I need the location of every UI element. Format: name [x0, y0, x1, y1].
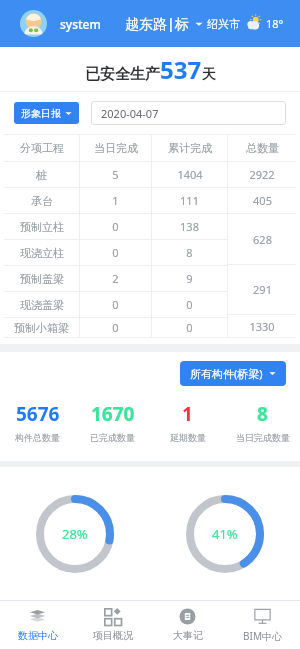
staticText: 构件总数量 [15, 432, 60, 443]
staticText: 预制盖梁 [20, 272, 64, 286]
button[interactable]: 1 [150, 399, 225, 445]
staticText: 2 [112, 271, 119, 286]
staticText: 总数量 [246, 141, 279, 155]
staticText: 41% [212, 525, 238, 543]
staticText: 291 [253, 282, 272, 297]
staticText: 绍兴市 [207, 17, 240, 31]
staticText: 延期数量 [170, 432, 206, 443]
button[interactable]: Profile [20, 10, 47, 37]
button[interactable]: 大事记 [150, 601, 225, 649]
button[interactable]: 越东路|标 [125, 8, 203, 39]
staticText: BIM中心 [243, 629, 282, 643]
button[interactable]: 2020-04-07 [91, 101, 286, 125]
button[interactable]: 项目概况 [75, 601, 150, 649]
staticText: 已安全生产 [85, 65, 160, 84]
staticText: 18° [266, 16, 284, 31]
staticText: 现浇立柱 [20, 246, 64, 260]
staticText: 已完成数量 [90, 432, 135, 443]
button[interactable]: 5676 [0, 399, 75, 445]
staticText: 5676 [16, 401, 60, 427]
staticText: 8 [186, 245, 193, 260]
staticText: 405 [253, 193, 272, 208]
staticText: 28% [62, 525, 88, 543]
staticText: 1330 [249, 319, 275, 334]
staticText: 0 [112, 245, 119, 260]
button[interactable]: Progress 28% [36, 495, 114, 573]
button[interactable]: BIM中心 [225, 601, 300, 649]
staticText: 形象日报 [21, 107, 61, 120]
button[interactable]: 数据中心 [0, 601, 75, 649]
staticText: 0 [186, 320, 193, 335]
staticText: 1404 [177, 167, 203, 182]
staticText: 所有构件(桥梁) [190, 366, 263, 381]
staticText: 1 [182, 401, 193, 427]
staticText: 537 [160, 53, 202, 86]
staticText: 预制小箱梁 [14, 321, 69, 335]
staticText: 1670 [91, 401, 135, 427]
button[interactable]: 形象日报 [14, 102, 79, 124]
staticText: 0 [112, 297, 119, 312]
button[interactable]: 1670 [75, 399, 150, 445]
staticText: 1 [112, 193, 119, 208]
staticText: 分项工程 [20, 141, 64, 155]
staticText: 累计完成 [168, 141, 212, 155]
staticText: 大事记 [173, 629, 203, 642]
button[interactable]: Progress 41% [186, 495, 264, 573]
staticText: 现浇盖梁 [20, 298, 64, 312]
staticText: 桩 [36, 168, 47, 182]
staticText: 当日完成数量 [236, 432, 290, 443]
staticText: 越东路|标 [125, 14, 189, 33]
staticText: 9 [186, 271, 193, 286]
staticText: 承台 [31, 194, 53, 208]
staticText: 数据中心 [18, 629, 58, 642]
staticText: 预制立柱 [20, 220, 64, 234]
staticText: 0 [112, 320, 119, 335]
staticText: 2922 [249, 167, 275, 182]
staticText: 项目概况 [93, 629, 133, 642]
staticText: 628 [253, 232, 272, 247]
staticText: 8 [257, 401, 268, 427]
staticText: system [60, 16, 101, 32]
staticText: 天 [202, 66, 216, 84]
staticText: 当日完成 [94, 141, 138, 155]
staticText: 111 [180, 193, 199, 208]
staticText: 2020-04-07 [101, 106, 159, 121]
staticText: 138 [180, 219, 199, 234]
button[interactable]: Weather [207, 9, 290, 38]
staticText: 5 [112, 167, 119, 182]
button[interactable]: 所有构件(桥梁) [180, 361, 286, 386]
staticText: 0 [186, 297, 193, 312]
staticText: 0 [112, 219, 119, 234]
button[interactable]: 8 [225, 399, 300, 445]
